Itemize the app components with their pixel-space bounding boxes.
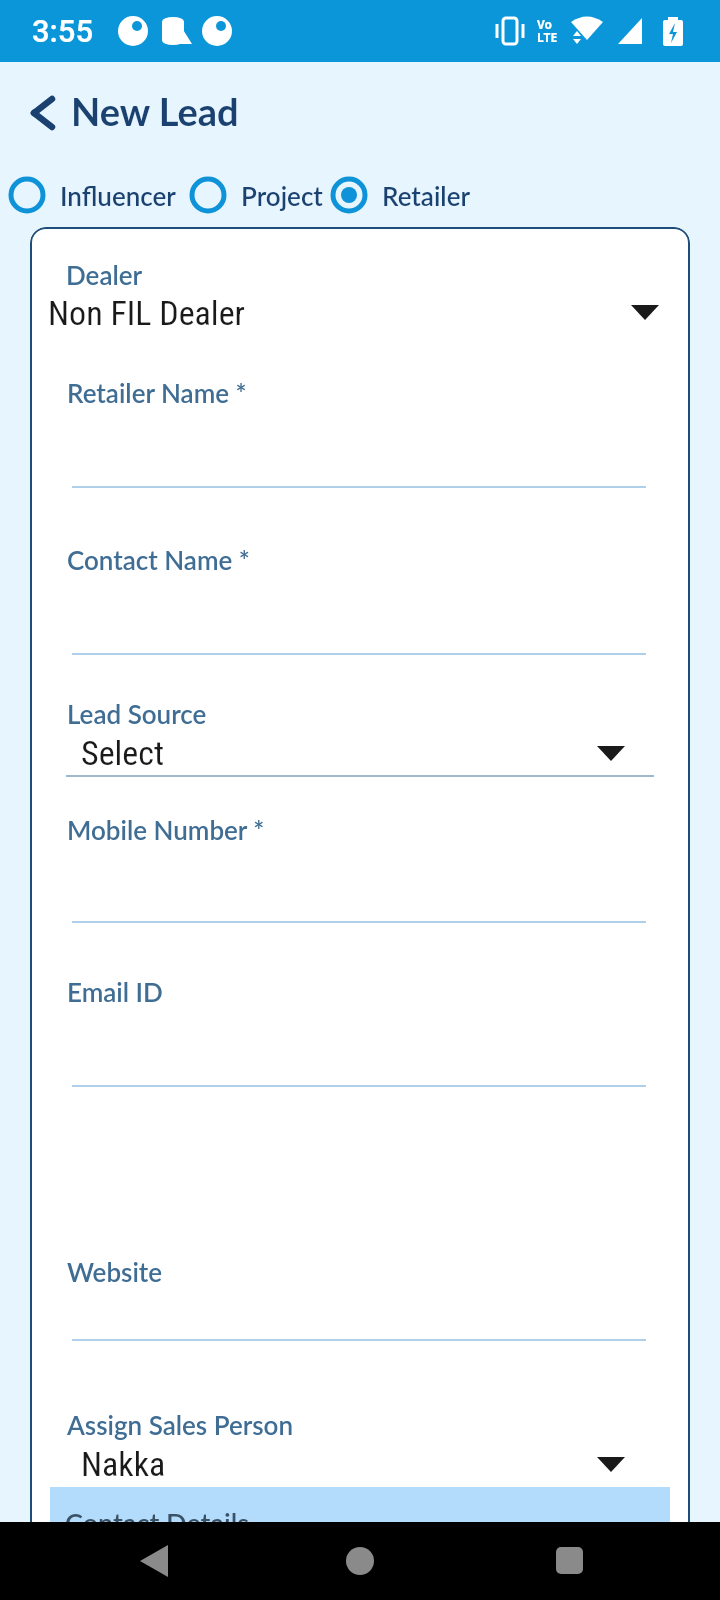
staticText: Contact Name * [67,544,250,575]
staticText: Non FIL Dealer [48,293,245,333]
staticText: Website [67,1256,163,1287]
button[interactable] [556,1547,583,1574]
button[interactable] [66,727,654,773]
staticText: Contact Details [65,1506,250,1522]
staticText: Vo LTE [537,16,558,46]
staticText: 3:55 [32,13,94,49]
staticText: Email ID [67,976,163,1007]
button[interactable] [597,746,625,761]
staticText: Dealer [66,259,143,290]
button[interactable] [66,1438,654,1484]
staticText: New Lead [71,88,239,134]
button[interactable]: Contact Details [50,1487,670,1522]
button[interactable] [597,1457,625,1472]
staticText: Lead Source [67,698,207,729]
staticText: Project [241,180,323,211]
button[interactable]: Retailer [330,178,471,212]
button[interactable] [346,1547,374,1575]
button[interactable] [72,1280,646,1338]
staticText: Retailer Name * [67,377,247,408]
button[interactable] [46,287,674,333]
staticText: Select [81,733,165,773]
button[interactable] [631,305,659,320]
button[interactable]: Project [189,178,323,212]
button[interactable] [27,96,61,130]
staticText: Mobile Number * [67,814,265,845]
staticText: Retailer [382,180,471,211]
staticText: Nakka [81,1444,166,1484]
button[interactable] [140,1545,168,1577]
button[interactable]: Influencer [8,178,176,212]
staticText: Assign Sales Person [67,1409,294,1440]
staticText: Influencer [60,180,176,211]
